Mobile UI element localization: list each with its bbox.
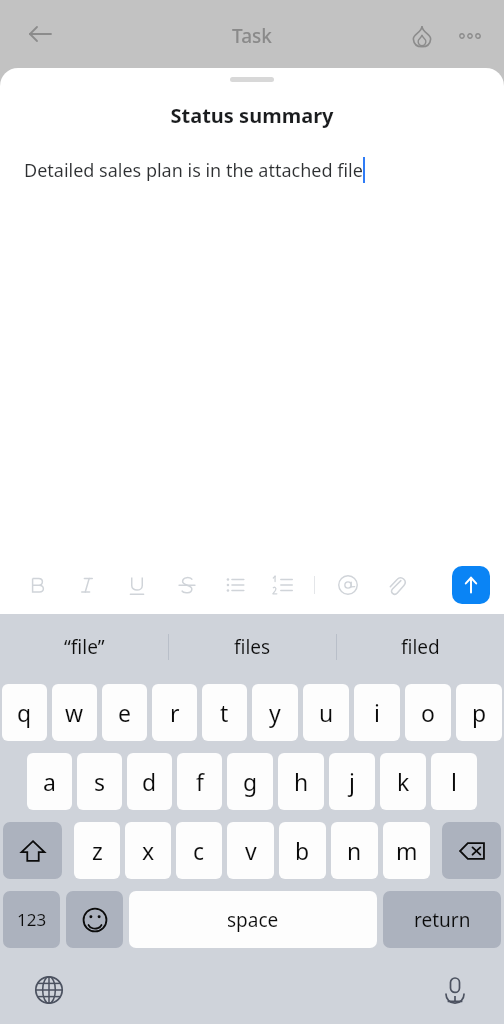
staticText: h — [294, 766, 309, 797]
staticText: return — [414, 907, 471, 933]
button[interactable]: t — [202, 684, 247, 741]
staticText: d — [142, 766, 157, 797]
staticText: s — [94, 766, 106, 797]
button[interactable]: x — [125, 822, 171, 879]
staticText: n — [347, 835, 362, 866]
button[interactable]: d — [127, 753, 172, 810]
button[interactable]: Underline — [124, 572, 150, 598]
button[interactable]: Dictation — [430, 965, 480, 1015]
staticText: e — [118, 697, 131, 728]
staticText: “file” — [64, 634, 105, 660]
staticText: space — [227, 907, 279, 933]
button[interactable]: Attach file — [383, 572, 409, 598]
button[interactable]: k — [380, 753, 426, 810]
button[interactable]: h — [278, 753, 324, 810]
button[interactable]: q — [2, 684, 47, 741]
staticText: 123 — [17, 908, 47, 931]
staticText: x — [142, 835, 155, 866]
staticText: Task — [232, 23, 272, 49]
staticText: k — [397, 766, 410, 797]
button[interactable]: Shift — [3, 822, 62, 879]
staticText: y — [269, 697, 281, 728]
button[interactable]: Change keyboard — [24, 965, 74, 1015]
staticText: i — [374, 697, 380, 728]
staticText: b — [295, 835, 310, 866]
staticText: u — [319, 697, 334, 728]
staticText: l — [451, 766, 457, 797]
button[interactable]: Streak — [398, 12, 446, 60]
button[interactable]: r — [152, 684, 197, 741]
button[interactable]: B — [24, 572, 50, 598]
button[interactable]: Mention — [335, 572, 361, 598]
staticText: files — [234, 634, 271, 660]
staticText: v — [245, 835, 257, 866]
staticText: Status summary — [0, 102, 504, 129]
button[interactable]: g — [227, 753, 273, 810]
staticText: p — [472, 697, 487, 728]
staticText: o — [421, 697, 435, 728]
button[interactable]: Backspace — [442, 822, 501, 879]
button[interactable]: j — [329, 753, 375, 810]
staticText: r — [170, 697, 180, 728]
button[interactable]: Bullet list — [222, 572, 248, 598]
button[interactable]: Italic — [74, 572, 100, 598]
button[interactable]: u — [303, 684, 349, 741]
button[interactable]: Emoji — [66, 891, 123, 948]
button[interactable]: l — [431, 753, 477, 810]
button[interactable]: i — [354, 684, 400, 741]
button[interactable]: Back — [16, 10, 64, 58]
button[interactable]: p — [456, 684, 502, 741]
button[interactable]: files — [169, 614, 336, 679]
staticText: t — [220, 697, 229, 728]
staticText: Detailed sales plan is in the attached f… — [24, 158, 363, 183]
staticText: q — [17, 697, 32, 728]
staticText: c — [193, 835, 205, 866]
staticText: filed — [401, 634, 440, 660]
button[interactable]: n — [331, 822, 378, 879]
button[interactable]: Send — [452, 566, 490, 604]
button[interactable]: 123 — [3, 891, 60, 948]
button[interactable]: c — [176, 822, 222, 879]
button[interactable]: m — [383, 822, 430, 879]
button[interactable]: Strikethrough — [174, 572, 200, 598]
staticText: j — [349, 766, 355, 797]
button[interactable]: Numbered list — [270, 572, 296, 598]
button[interactable]: z — [74, 822, 120, 879]
button[interactable]: y — [252, 684, 298, 741]
staticText: g — [243, 766, 258, 797]
staticText: a — [43, 766, 56, 797]
button[interactable]: s — [77, 753, 122, 810]
button[interactable]: More options — [446, 12, 494, 60]
staticText: z — [92, 835, 103, 866]
button[interactable]: f — [177, 753, 222, 810]
button[interactable]: v — [227, 822, 274, 879]
button[interactable]: b — [279, 822, 326, 879]
button[interactable]: w — [52, 684, 97, 741]
staticText: f — [196, 766, 204, 797]
button[interactable]: e — [102, 684, 147, 741]
button[interactable]: filed — [337, 614, 504, 679]
staticText: m — [396, 835, 418, 866]
button[interactable]: space — [129, 891, 377, 948]
button[interactable]: “file” — [0, 614, 168, 679]
button[interactable]: a — [27, 753, 72, 810]
button[interactable]: o — [405, 684, 451, 741]
button[interactable]: return — [383, 891, 501, 948]
staticText: w — [65, 697, 84, 728]
